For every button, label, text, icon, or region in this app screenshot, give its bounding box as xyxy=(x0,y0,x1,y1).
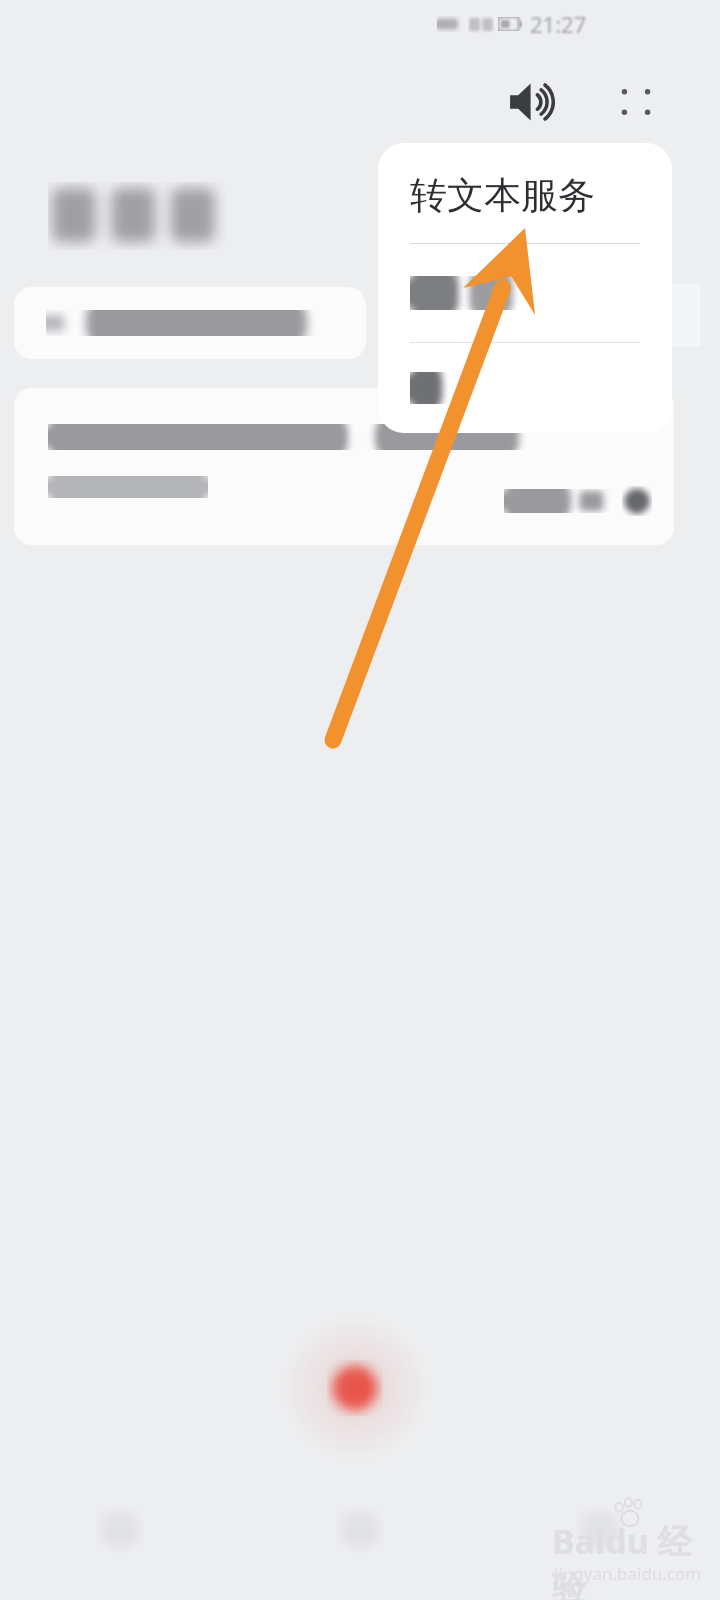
staticText: jingyan.baidu.com xyxy=(554,1562,702,1585)
button[interactable]: More options xyxy=(600,66,672,138)
button[interactable]: Speaker xyxy=(500,66,572,138)
button[interactable]: Record xyxy=(275,1308,435,1468)
staticText: 转文本服务 xyxy=(410,172,595,219)
button[interactable] xyxy=(14,388,674,545)
button[interactable] xyxy=(378,343,672,433)
button[interactable] xyxy=(14,287,366,359)
staticText: Baidu 经验 xyxy=(552,1518,712,1600)
staticText: 21:27 xyxy=(530,9,587,39)
button[interactable] xyxy=(378,244,672,342)
button[interactable]: Tab three xyxy=(480,1462,720,1582)
button[interactable]: 转文本服务 xyxy=(378,143,672,243)
